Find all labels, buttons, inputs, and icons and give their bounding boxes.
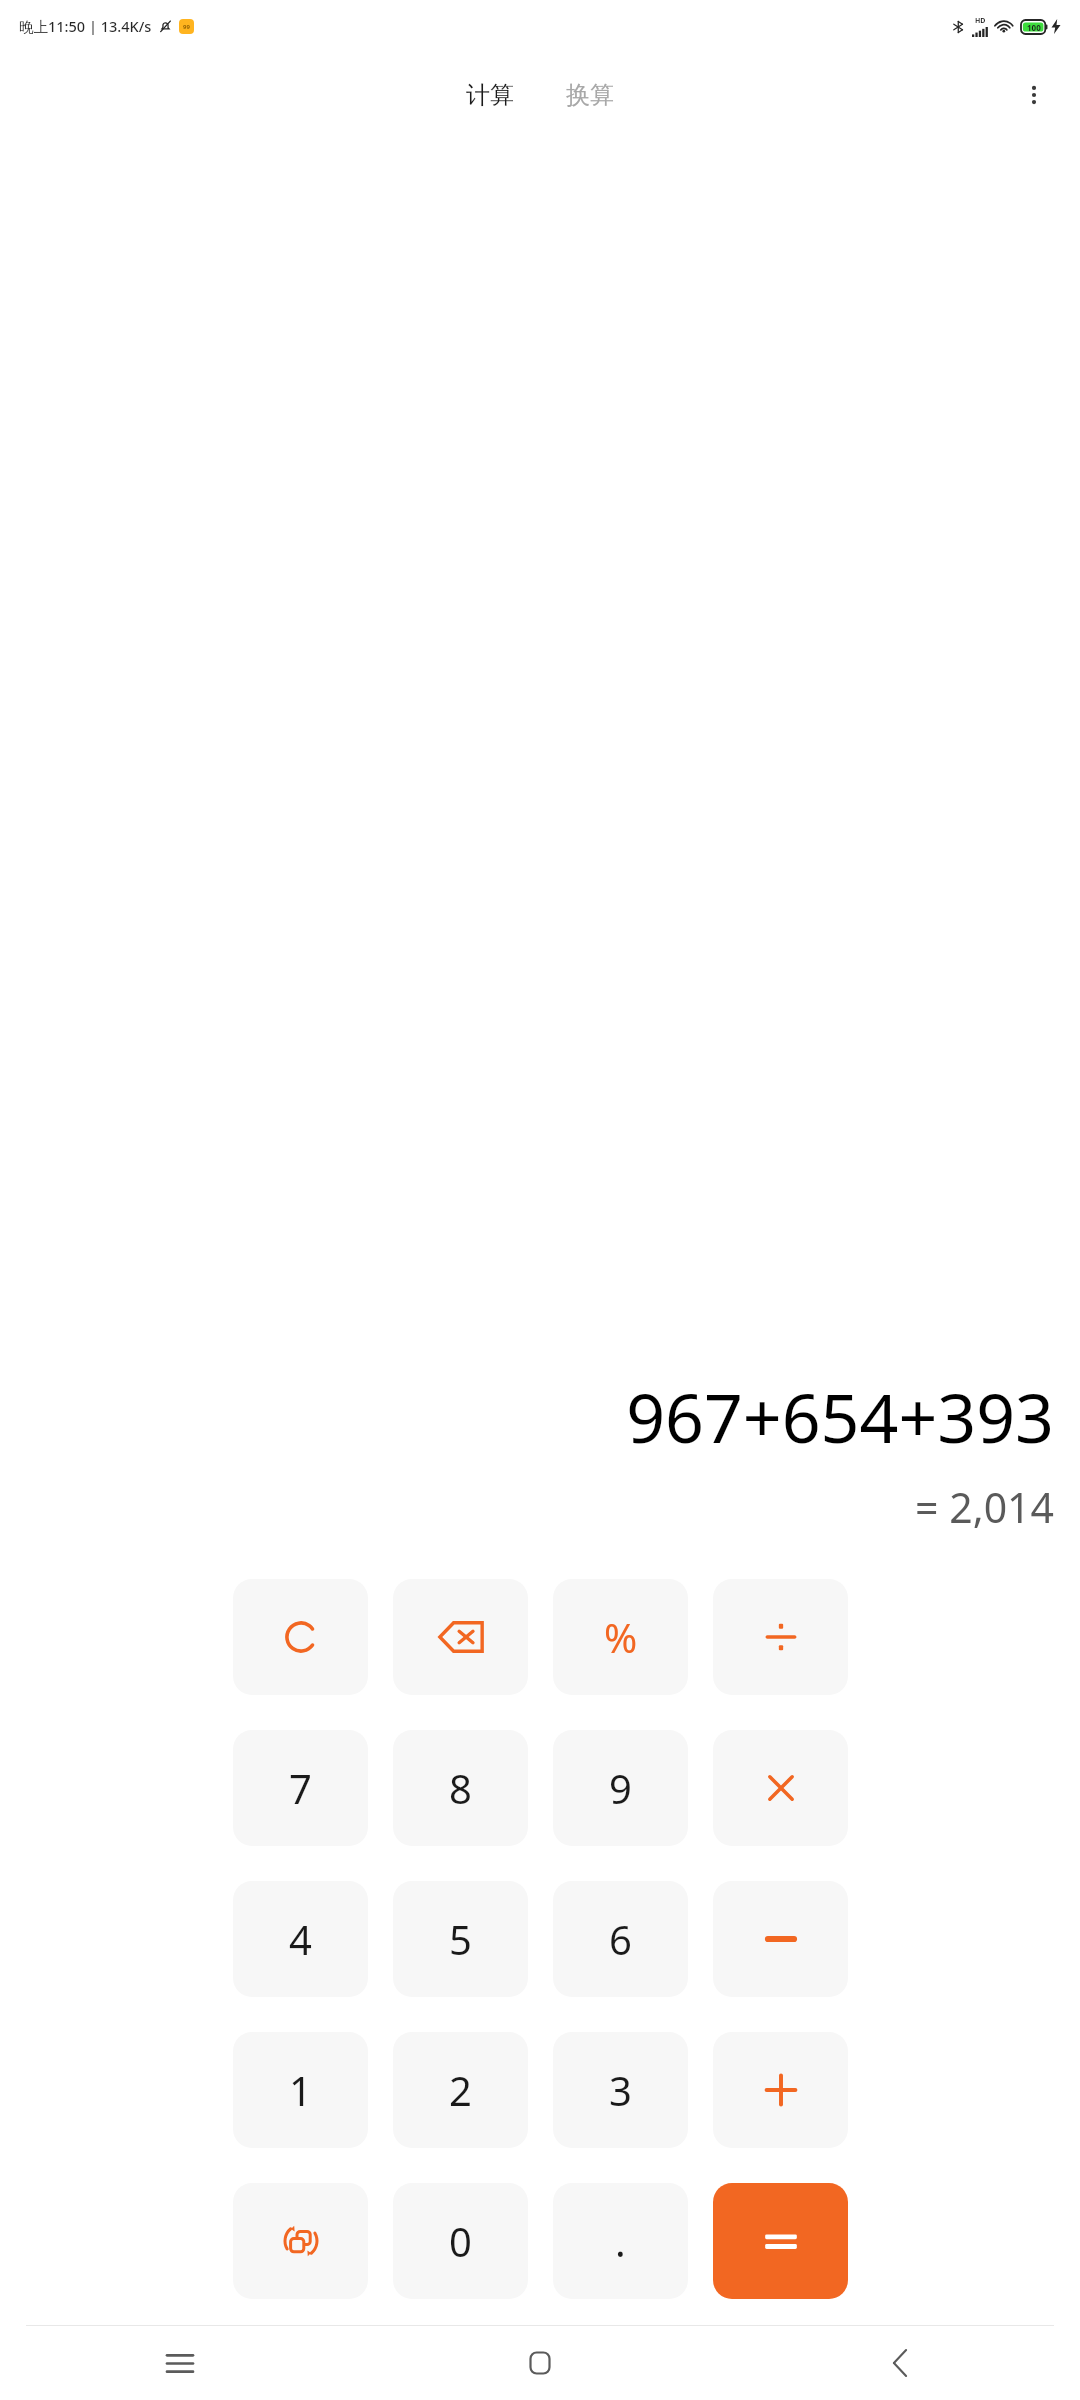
- staticText: 4: [289, 1912, 312, 1966]
- button[interactable]: 4: [233, 1881, 368, 1997]
- button[interactable]: 8: [393, 1730, 528, 1846]
- button[interactable]: Equals: [713, 2183, 848, 2299]
- button[interactable]: [393, 1579, 528, 1695]
- button[interactable]: [233, 1579, 368, 1695]
- button[interactable]: 7: [233, 1730, 368, 1846]
- button[interactable]: %: [553, 1579, 688, 1695]
- button[interactable]: [713, 1579, 848, 1695]
- button[interactable]: 计算: [458, 74, 522, 116]
- staticText: 3: [609, 2063, 632, 2117]
- button[interactable]: 2: [393, 2032, 528, 2148]
- button[interactable]: 0: [393, 2183, 528, 2299]
- staticText: HD: [975, 16, 986, 26]
- staticText: 换算: [566, 80, 614, 110]
- button[interactable]: 1: [233, 2032, 368, 2148]
- staticText: 2: [449, 2063, 472, 2117]
- staticText: .: [615, 2214, 626, 2268]
- button[interactable]: 9: [553, 1730, 688, 1846]
- button[interactable]: 换算: [558, 74, 622, 116]
- staticText: %: [604, 1610, 638, 1664]
- button[interactable]: Recent apps: [0, 2326, 360, 2400]
- button[interactable]: Home: [360, 2326, 720, 2400]
- button[interactable]: Unit conversion: [233, 2183, 368, 2299]
- staticText: 1: [289, 2063, 312, 2117]
- button[interactable]: 5: [393, 1881, 528, 1997]
- staticText: 99: [183, 23, 190, 31]
- staticText: 计算: [466, 80, 514, 110]
- button[interactable]: [713, 2032, 848, 2148]
- staticText: 晚上11:50 | 13.4K/s: [19, 16, 152, 36]
- staticText: 967+654+393: [626, 1370, 1054, 1463]
- button[interactable]: [713, 1881, 848, 1997]
- staticText: 100: [1027, 22, 1041, 33]
- staticText: 7: [289, 1761, 312, 1815]
- staticText: 6: [609, 1912, 632, 1966]
- staticText: 5: [449, 1912, 472, 1966]
- button[interactable]: 3: [553, 2032, 688, 2148]
- button[interactable]: 6: [553, 1881, 688, 1997]
- staticText: 0: [449, 2214, 472, 2268]
- button[interactable]: [713, 1730, 848, 1846]
- button[interactable]: More options: [1010, 71, 1058, 119]
- button[interactable]: Back: [720, 2326, 1080, 2400]
- staticText: = 2,014: [915, 1479, 1054, 1535]
- staticText: 9: [609, 1761, 632, 1815]
- staticText: 8: [449, 1761, 472, 1815]
- button[interactable]: .: [553, 2183, 688, 2299]
